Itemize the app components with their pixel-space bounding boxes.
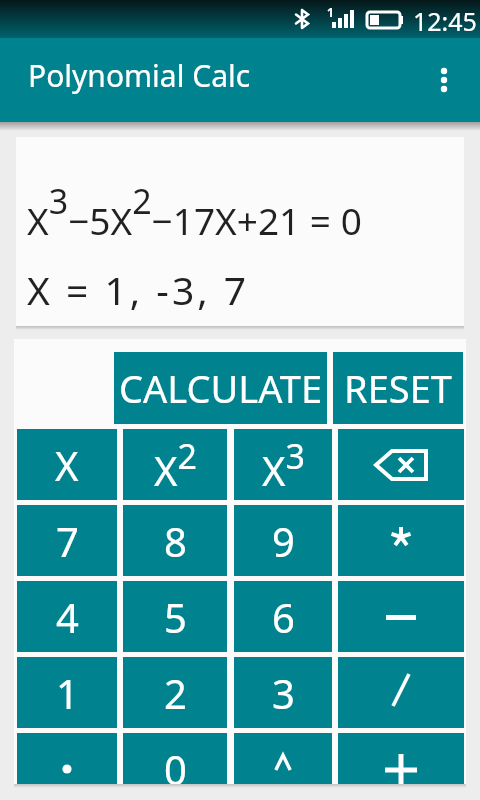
button[interactable] [17,733,117,800]
button[interactable] [338,657,464,728]
button[interactable]: CALCULATE [114,352,327,424]
staticText: 7 [56,514,79,568]
staticText: X [55,438,79,492]
button[interactable]: 5 [123,581,227,652]
button[interactable]: 4 [17,581,117,652]
staticText: 0 [164,742,187,796]
staticText: X3 [262,433,305,497]
staticText: 1 [56,666,79,720]
staticText: CALCULATE [119,362,323,414]
button[interactable] [234,733,332,800]
staticText: 9 [272,514,295,568]
staticText: 3 [272,666,295,720]
button[interactable] [338,429,464,500]
staticText: X3−5X2−17X+21 = 0 [27,178,362,246]
button[interactable] [338,733,464,800]
staticText: Polynomial Calc [28,55,251,96]
button[interactable]: 0 [123,733,227,800]
button[interactable]: X [17,429,117,500]
button[interactable]: 8 [123,505,227,576]
staticText: 5 [164,590,187,644]
button[interactable] [338,505,464,576]
button[interactable]: 6 [234,581,332,652]
staticText: 1 [327,4,334,20]
button[interactable]: 3 [234,657,332,728]
button[interactable]: RESET [333,352,463,424]
button[interactable]: X2 [123,429,227,500]
button[interactable]: 7 [17,505,117,576]
staticText: RESET [344,362,452,414]
button[interactable]: 1 [17,657,117,728]
staticText: X2 [154,433,197,497]
staticText: 2 [164,666,187,720]
button[interactable] [432,56,480,104]
button[interactable] [338,581,464,652]
staticText: X = 1, -3, 7 [27,263,250,316]
button[interactable]: 2 [123,657,227,728]
staticText: 8 [164,514,187,568]
staticText: 6 [272,590,295,644]
button[interactable]: X3 [234,429,332,500]
staticText: 12:45 [413,4,477,38]
button[interactable]: 9 [234,505,332,576]
staticText: 4 [56,590,79,644]
